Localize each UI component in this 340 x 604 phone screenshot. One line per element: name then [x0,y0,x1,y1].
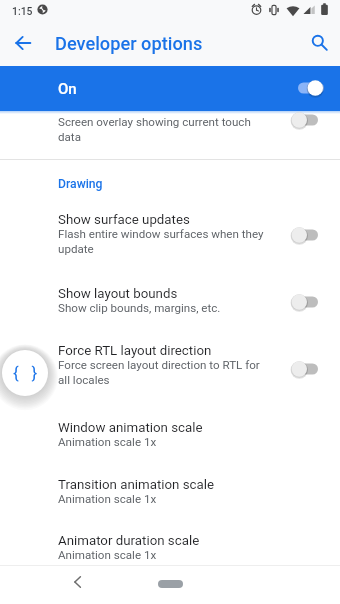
button[interactable]: Show surface updates [0,212,340,258]
button[interactable]: Force RTL layout direction [0,343,340,389]
staticText: Show surface updates [58,212,190,228]
staticText: Force screen layout direction to RTL for… [58,358,268,386]
button[interactable]: On [0,66,340,111]
staticText: Developer options [55,33,203,54]
staticText: Transition animation scale [58,477,215,493]
staticText: Show layout bounds [58,286,178,302]
button[interactable]: Window animation scale [0,420,340,466]
button[interactable]: Show layout bounds [0,286,340,332]
button[interactable]: Search [304,27,334,57]
button[interactable]: Toggle off [288,110,318,130]
staticText: Screen overlay showing current touch dat… [58,115,268,143]
staticText: Flash entire window surfaces when they u… [58,227,268,255]
button[interactable]: Screen overlay showing current touch dat… [0,111,340,159]
button[interactable]: Back [67,571,89,593]
staticText: { } [13,363,38,383]
button[interactable]: Transition animation scale [0,477,340,523]
button[interactable]: Back [8,28,38,58]
button[interactable]: Animator duration scale [0,533,340,579]
staticText: Force RTL layout direction [58,343,212,359]
staticText: Window animation scale [58,420,203,436]
button[interactable]: Home [158,580,183,588]
staticText: Show clip bounds, margins, etc. [58,301,268,315]
button[interactable]: Toggle off [288,292,318,312]
staticText: On [58,80,77,98]
staticText: Animator duration scale [58,533,200,549]
button[interactable]: Toggle on [294,78,324,98]
staticText: Drawing [58,177,103,191]
button[interactable]: Toggle off [288,225,318,245]
staticText: Animation scale 1x [58,492,268,506]
button[interactable]: Toggle off [288,359,318,379]
staticText: Animation scale 1x [58,435,268,449]
staticText: Animation scale 1x [58,548,268,562]
button[interactable]: Developer options bubble [0,343,55,403]
staticText: 1:15 [12,5,33,17]
